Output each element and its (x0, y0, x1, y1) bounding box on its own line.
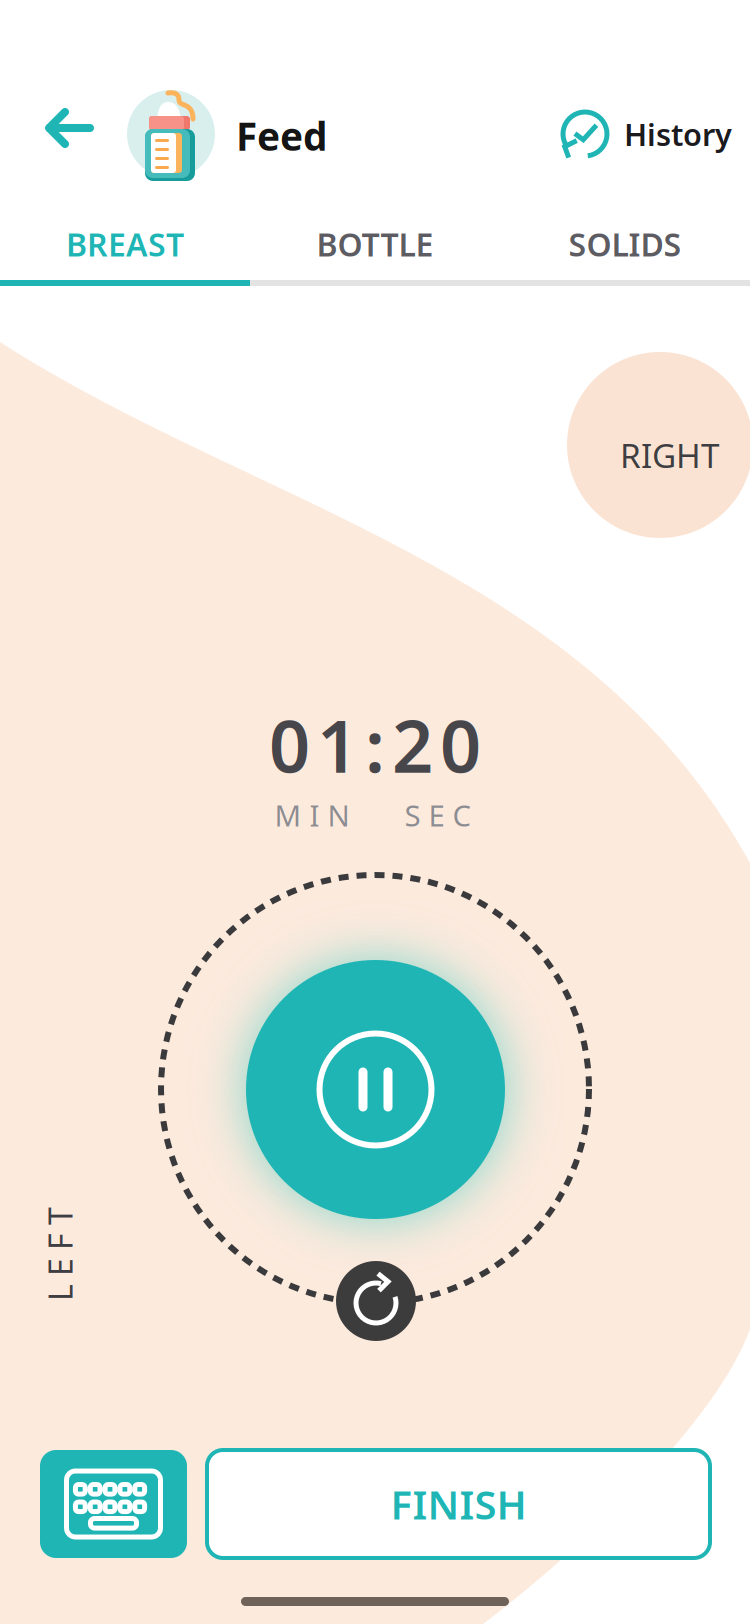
button[interactable]: BREAST (0, 208, 250, 280)
button[interactable]: BOTTLE (250, 208, 500, 280)
staticText: S E C (404, 796, 471, 835)
staticText: L E F T (13, 1233, 107, 1275)
staticText: M I N (274, 796, 349, 835)
staticText: SOLIDS (568, 223, 681, 265)
button[interactable]: Reset timer (336, 1261, 416, 1341)
staticText: BREAST (66, 223, 184, 265)
button[interactable]: FINISH (207, 1450, 710, 1558)
staticText: RIGHT (620, 433, 720, 477)
button[interactable]: SOLIDS (500, 208, 750, 280)
button[interactable]: Enter manually (40, 1450, 187, 1558)
staticText: Feed (236, 110, 327, 161)
staticText: History (624, 114, 732, 154)
staticText: 01:20 (269, 697, 481, 793)
button[interactable]: Back (29, 93, 110, 163)
button[interactable]: Pause (246, 960, 505, 1219)
staticText: FINISH (390, 1477, 526, 1530)
staticText: BOTTLE (316, 223, 433, 265)
button[interactable]: History (550, 99, 742, 169)
